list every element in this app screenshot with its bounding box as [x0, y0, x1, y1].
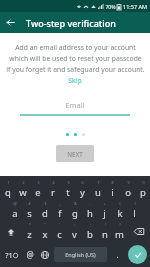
button[interactable]: $: [37, 200, 52, 221]
staticText: ): [134, 201, 136, 206]
staticText: 4: [52, 180, 55, 185]
staticText: j: [103, 207, 106, 220]
button[interactable]: Enter: [128, 245, 147, 264]
button[interactable]: Period: [109, 242, 125, 267]
button[interactable]: Email: [20, 100, 130, 116]
button[interactable]: 8: [105, 179, 120, 200]
button[interactable]: 3: [30, 179, 45, 200]
button[interactable]: :: [67, 221, 82, 242]
staticText: ": [44, 222, 46, 227]
staticText: .: [116, 249, 119, 260]
staticText: l: [133, 207, 136, 220]
button[interactable]: English (US): [54, 247, 107, 262]
staticText: 9: [127, 180, 130, 185]
staticText: Skip: [68, 76, 82, 85]
staticText: Add an email address to your account: [15, 43, 136, 52]
staticText: which will be used to reset your passcod…: [9, 54, 142, 63]
staticText: m: [115, 228, 124, 241]
staticText: b: [87, 228, 93, 241]
staticText: 3: [37, 180, 40, 185]
button[interactable]: 9: [120, 179, 135, 200]
staticText: g: [72, 207, 78, 220]
staticText: 7: [97, 180, 100, 185]
button[interactable]: 5: [60, 179, 75, 200]
button[interactable]: Backspace: [127, 221, 150, 242]
button[interactable]: _: [52, 200, 67, 221]
staticText: r: [51, 186, 55, 199]
staticText: -: [89, 201, 91, 206]
staticText: s: [27, 207, 32, 220]
staticText: a: [12, 207, 18, 220]
staticText: English (US): [65, 251, 96, 258]
staticText: k: [117, 207, 123, 220]
staticText: *: [29, 222, 31, 227]
button[interactable]: 4: [45, 179, 60, 200]
staticText: 5: [67, 180, 70, 185]
staticText: _: [59, 201, 61, 206]
staticText: &: [74, 201, 77, 206]
button[interactable]: 1: [0, 179, 15, 200]
staticText: q: [5, 186, 11, 199]
staticText: c: [57, 228, 62, 241]
button[interactable]: ': [52, 221, 67, 242]
staticText: v: [72, 228, 77, 241]
staticText: +: [103, 201, 106, 206]
staticText: i: [111, 186, 114, 199]
staticText: x: [42, 228, 48, 241]
staticText: w: [19, 186, 27, 199]
staticText: :: [74, 222, 75, 227]
button[interactable]: ?: [112, 221, 127, 242]
button[interactable]: 7: [90, 179, 105, 200]
staticText: 70%: [105, 3, 116, 10]
button[interactable]: 0: [135, 179, 150, 200]
button[interactable]: ): [127, 200, 142, 221]
staticText: e: [35, 186, 41, 199]
button[interactable]: +: [97, 200, 112, 221]
button[interactable]: Shift: [0, 221, 22, 242]
staticText: ;: [90, 222, 91, 227]
staticText: 11:57 AM: [123, 3, 147, 10]
button[interactable]: ": [37, 221, 52, 242]
staticText: ?: [119, 222, 121, 227]
button[interactable]: -: [82, 200, 97, 221]
staticText: t: [66, 186, 70, 199]
staticText: $: [44, 201, 47, 206]
button[interactable]: !: [97, 221, 112, 242]
button[interactable]: Back: [0, 12, 21, 33]
button[interactable]: 2: [15, 179, 30, 200]
button[interactable]: Skip: [58, 75, 92, 86]
button[interactable]: At sign: [22, 242, 37, 267]
staticText: 8: [111, 180, 114, 185]
staticText: !: [105, 222, 106, 227]
staticText: p: [140, 186, 146, 199]
button[interactable]: Change language: [37, 242, 52, 267]
staticText: o: [125, 186, 131, 199]
button[interactable]: *: [22, 221, 37, 242]
button[interactable]: ;: [82, 221, 97, 242]
staticText: ': [59, 222, 60, 227]
staticText: Email: [65, 100, 85, 110]
staticText: @: [26, 249, 34, 260]
staticText: NEXT: [67, 150, 83, 158]
staticText: if you forget it and safeguard your acco…: [6, 65, 145, 74]
staticText: 1: [7, 180, 10, 185]
staticText: h: [87, 207, 93, 220]
staticText: Two-step verification: [26, 17, 116, 29]
button[interactable]: 6: [75, 179, 90, 200]
staticText: (: [119, 201, 121, 206]
button[interactable]: NEXT: [56, 145, 94, 162]
staticText: z: [27, 228, 32, 241]
button[interactable]: @: [7, 200, 22, 221]
staticText: y: [80, 186, 85, 199]
staticText: #: [28, 201, 31, 206]
staticText: 6: [81, 180, 84, 185]
staticText: d: [42, 207, 48, 220]
button[interactable]: &: [67, 200, 82, 221]
staticText: u: [95, 186, 101, 199]
button[interactable]: ?1: [0, 242, 22, 267]
button[interactable]: (: [112, 200, 127, 221]
button[interactable]: #: [22, 200, 37, 221]
staticText: ?1: [5, 250, 13, 260]
staticText: n: [102, 228, 108, 241]
staticText: f: [58, 207, 62, 220]
